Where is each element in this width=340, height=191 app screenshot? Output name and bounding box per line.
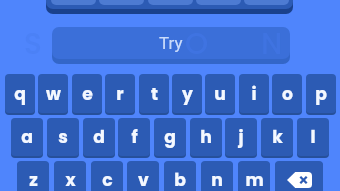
staticText: i xyxy=(251,82,257,106)
button[interactable]: s xyxy=(47,118,79,156)
staticText: r xyxy=(116,82,124,106)
staticText: g xyxy=(164,125,176,149)
button[interactable]: e xyxy=(72,74,102,113)
staticText: s xyxy=(58,125,68,149)
button[interactable]: Try xyxy=(52,27,290,59)
button[interactable]: r xyxy=(105,74,135,113)
button[interactable]: a xyxy=(11,118,43,156)
staticText: Try xyxy=(159,33,183,53)
button[interactable]: x xyxy=(54,161,86,191)
button[interactable]: o xyxy=(272,74,302,113)
staticText: u xyxy=(214,82,226,106)
staticText: o xyxy=(282,82,293,106)
staticText: p xyxy=(315,82,327,106)
staticText: y xyxy=(182,82,193,106)
button[interactable]: g xyxy=(154,118,186,156)
staticText: x xyxy=(65,168,76,191)
button[interactable]: k xyxy=(261,118,293,156)
staticText: m xyxy=(245,168,264,191)
staticText: N xyxy=(261,23,283,64)
button[interactable]: z xyxy=(17,161,49,191)
button[interactable]: m xyxy=(238,161,270,191)
staticText: v xyxy=(138,168,149,191)
staticText: h xyxy=(200,125,212,149)
staticText: j xyxy=(238,125,244,149)
staticText: l xyxy=(310,125,316,149)
staticText: e xyxy=(82,82,93,106)
button[interactable]: f xyxy=(118,118,150,156)
button[interactable]: p xyxy=(306,74,336,113)
button[interactable]: y xyxy=(172,74,202,113)
staticText: k xyxy=(272,125,283,149)
staticText: q xyxy=(14,82,26,106)
staticText: b xyxy=(174,168,186,191)
button[interactable]: v xyxy=(127,161,159,191)
staticText: w xyxy=(46,82,61,106)
staticText: t xyxy=(151,82,158,106)
staticText: f xyxy=(131,125,138,149)
button[interactable]: Backspace xyxy=(275,161,323,191)
button[interactable]: q xyxy=(5,74,35,113)
staticText: a xyxy=(21,125,33,149)
button[interactable]: u xyxy=(205,74,235,113)
button[interactable]: w xyxy=(38,74,68,113)
staticText: O xyxy=(185,23,209,64)
button[interactable]: j xyxy=(225,118,257,156)
button[interactable]: h xyxy=(190,118,222,156)
button[interactable]: t xyxy=(139,74,169,113)
staticText: z xyxy=(29,168,38,191)
button[interactable]: n xyxy=(201,161,233,191)
button[interactable]: l xyxy=(297,118,329,156)
staticText: n xyxy=(211,168,223,191)
button[interactable]: c xyxy=(91,161,123,191)
button[interactable]: d xyxy=(83,118,115,156)
button[interactable]: i xyxy=(239,74,269,113)
button[interactable]: b xyxy=(164,161,196,191)
staticText: c xyxy=(102,168,113,191)
staticText: d xyxy=(93,125,105,149)
